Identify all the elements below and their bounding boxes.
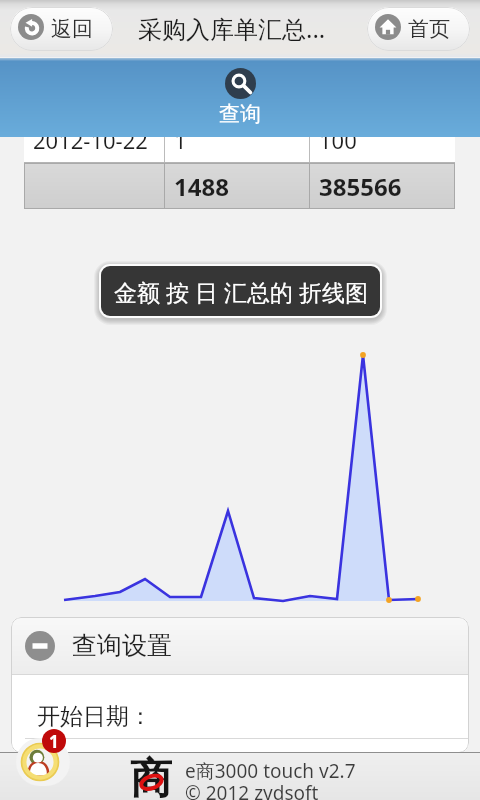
staticText: 返回 (51, 16, 93, 42)
button[interactable]: 查询设置 (11, 617, 469, 674)
staticText: 查询 (219, 101, 261, 127)
staticText: 100 (319, 125, 357, 155)
staticText: © 2012 zydsoft (185, 780, 319, 800)
staticText: 385566 (319, 170, 402, 203)
button[interactable]: Home (367, 7, 470, 51)
staticText: 金额 按 日 汇总的 折线图 (114, 276, 368, 307)
button[interactable]: Back (10, 7, 113, 51)
staticText: 2012-10-22 (33, 125, 148, 155)
button[interactable]: Notifications (16, 738, 70, 786)
staticText: 查询设置 (72, 630, 172, 661)
staticText: 首页 (408, 16, 450, 42)
staticText: e商3000 touch v2.7 (185, 758, 356, 784)
staticText: 采购入库单汇总... (138, 12, 326, 45)
button[interactable]: 查询 (0, 58, 480, 137)
staticText: 1 (49, 730, 59, 753)
staticText: 商 (130, 753, 172, 799)
button[interactable]: 金额 按 日 汇总的 折线图 (101, 266, 380, 316)
staticText: 1488 (174, 170, 229, 203)
staticText: 1 (174, 125, 187, 155)
staticText: 开始日期： (37, 702, 152, 731)
